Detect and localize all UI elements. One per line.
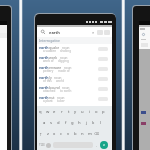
staticText: g bbox=[71, 120, 74, 126]
staticText: j bbox=[86, 120, 88, 126]
staticText: noun bbox=[62, 46, 70, 50]
staticText: Interrogative bbox=[39, 38, 60, 43]
button[interactable]: t bbox=[65, 108, 72, 116]
staticText: m bbox=[88, 131, 92, 137]
button[interactable]: earth bbox=[37, 74, 112, 84]
button[interactable]: Shift bbox=[37, 130, 44, 138]
staticText: earth bbox=[39, 45, 49, 50]
button[interactable]: o bbox=[93, 108, 100, 116]
button[interactable]: p bbox=[100, 108, 107, 116]
button[interactable]: x bbox=[51, 130, 58, 138]
button[interactable]: Play bbox=[98, 67, 108, 71]
button[interactable]: Play bbox=[98, 97, 108, 101]
staticText: h bbox=[78, 120, 81, 126]
staticText: n bbox=[81, 131, 84, 137]
button[interactable]: earth bbox=[37, 54, 112, 64]
button[interactable]: n bbox=[79, 130, 86, 138]
button[interactable]: earth bbox=[37, 44, 112, 54]
staticText: earth bbox=[49, 30, 60, 35]
staticText: tuber bbox=[57, 99, 65, 103]
button[interactable]: r bbox=[58, 108, 65, 116]
staticText: noun bbox=[62, 86, 70, 90]
staticText: ⌫ bbox=[94, 132, 100, 136]
staticText: ⌕ bbox=[103, 143, 106, 147]
button[interactable]: Symbols bbox=[39, 141, 45, 149]
staticText: . bbox=[96, 143, 98, 148]
staticText: ly bbox=[49, 75, 52, 80]
button[interactable]: z bbox=[44, 130, 51, 138]
button[interactable]: f bbox=[62, 119, 69, 127]
button[interactable]: Emoji bbox=[46, 143, 51, 148]
button[interactable]: Play bbox=[98, 87, 108, 91]
staticText: a sudden bbox=[43, 49, 56, 53]
staticText: to earth bbox=[60, 89, 72, 93]
staticText: bound bbox=[49, 85, 60, 90]
button[interactable]: Backspace bbox=[93, 130, 100, 138]
button[interactable]: y bbox=[72, 108, 79, 116]
button[interactable]: l bbox=[97, 119, 104, 127]
button[interactable]: b bbox=[72, 130, 79, 138]
staticText: o bbox=[95, 109, 98, 115]
staticText: y bbox=[74, 109, 77, 115]
staticText: digging bbox=[58, 59, 69, 63]
staticText: a bbox=[43, 120, 46, 126]
staticText: shaking bbox=[60, 49, 72, 53]
staticText: attached bbox=[43, 89, 56, 93]
staticText: s bbox=[50, 120, 53, 126]
staticText: of this bbox=[43, 79, 52, 83]
button[interactable]: c bbox=[58, 130, 65, 138]
staticText: noun bbox=[60, 56, 68, 60]
button[interactable]: earth bbox=[37, 84, 112, 94]
staticText: c bbox=[60, 131, 63, 137]
staticText: ↑ bbox=[39, 132, 43, 137]
staticText: noun bbox=[57, 96, 65, 100]
button[interactable]: m bbox=[86, 130, 93, 138]
staticText: work of bbox=[43, 59, 54, 63]
button[interactable]: g bbox=[69, 119, 76, 127]
button[interactable]: Play bbox=[98, 57, 108, 61]
button[interactable]: i bbox=[86, 108, 93, 116]
button[interactable]: e bbox=[51, 108, 58, 116]
staticText: a plant bbox=[43, 99, 53, 103]
staticText: earth bbox=[39, 55, 49, 60]
button[interactable]: earth bbox=[37, 27, 112, 37]
staticText: z bbox=[47, 131, 49, 137]
button[interactable]: earth bbox=[37, 64, 112, 74]
staticText: d bbox=[57, 120, 60, 126]
button[interactable]: d bbox=[55, 119, 62, 127]
staticText: noun bbox=[54, 76, 62, 80]
staticText: v bbox=[67, 131, 70, 137]
staticText: nut bbox=[49, 95, 55, 100]
staticText: work bbox=[49, 55, 58, 60]
staticText: q bbox=[39, 109, 42, 115]
staticText: t bbox=[68, 109, 70, 115]
button[interactable]: q bbox=[37, 108, 44, 116]
button[interactable]: k bbox=[90, 119, 97, 127]
button[interactable]: j bbox=[83, 119, 90, 127]
button[interactable]: earth bbox=[37, 94, 112, 104]
button[interactable]: Play bbox=[98, 47, 108, 51]
staticText: l bbox=[100, 120, 102, 126]
staticText: k bbox=[92, 120, 95, 126]
staticText: r bbox=[61, 109, 63, 115]
button[interactable]: Play bbox=[98, 77, 108, 81]
staticText: earth bbox=[39, 65, 49, 70]
button[interactable]: w bbox=[44, 108, 51, 116]
staticText: e bbox=[53, 109, 56, 115]
staticText: i bbox=[89, 109, 91, 115]
staticText: enware bbox=[49, 65, 62, 70]
button[interactable]: h bbox=[76, 119, 83, 127]
staticText: noun bbox=[64, 66, 72, 70]
staticText: b bbox=[74, 131, 77, 137]
button[interactable]: Search bbox=[100, 141, 108, 149]
button[interactable]: v bbox=[65, 130, 72, 138]
staticText: x bbox=[53, 131, 56, 137]
button[interactable]: a bbox=[41, 119, 48, 127]
button[interactable]: Period bbox=[95, 141, 99, 149]
button[interactable]: u bbox=[79, 108, 86, 116]
staticText: world bbox=[56, 79, 65, 83]
button[interactable]: s bbox=[48, 119, 55, 127]
